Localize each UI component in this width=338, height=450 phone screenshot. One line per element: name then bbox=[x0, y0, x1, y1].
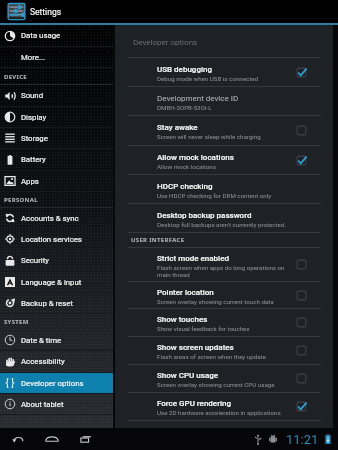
button[interactable]: About tablet bbox=[0, 394, 113, 415]
staticText: Screen overlay showing current touch dat… bbox=[157, 298, 274, 305]
button[interactable]: Sound bbox=[0, 85, 113, 107]
staticText: Pointer location bbox=[157, 288, 214, 297]
staticText: Stay awake bbox=[157, 123, 198, 132]
button[interactable]: Accessibility bbox=[0, 351, 113, 373]
staticText: Development device ID bbox=[157, 94, 239, 103]
staticText: Accounts & sync bbox=[21, 214, 79, 223]
button[interactable]: Pointer location bbox=[115, 282, 333, 309]
staticText: Location services bbox=[21, 235, 82, 244]
staticText: USB debugging bbox=[157, 65, 212, 74]
button[interactable]: Display bbox=[0, 107, 113, 128]
staticText: PERSONAL bbox=[4, 196, 38, 204]
button[interactable]: Backup & reset bbox=[0, 293, 113, 314]
staticText: Show visual feedback for touches bbox=[157, 325, 250, 332]
button[interactable]: USB debugging bbox=[115, 58, 333, 87]
staticText: Allow mock locations bbox=[157, 153, 234, 162]
button[interactable]: Show CPU usage bbox=[115, 365, 333, 393]
button[interactable]: Accounts & sync bbox=[0, 208, 113, 229]
staticText: Force GPU rendering bbox=[157, 399, 231, 408]
staticText: DMBH-3OPB-53OI-L bbox=[157, 104, 212, 111]
staticText: Display bbox=[21, 113, 47, 122]
staticText: HDCP checking bbox=[157, 182, 213, 191]
staticText: DEVICE bbox=[4, 73, 27, 81]
staticText: About tablet bbox=[21, 400, 64, 409]
staticText: Accessibility bbox=[21, 357, 65, 366]
staticText: Use 2D hardware acceleration in applicat… bbox=[157, 409, 281, 416]
button[interactable]: Settings bbox=[7, 2, 26, 21]
staticText: Show CPU usage bbox=[157, 371, 219, 380]
staticText: Settings bbox=[30, 7, 62, 17]
staticText: Apps bbox=[21, 177, 39, 186]
staticText: Debug mode when USB is connected bbox=[157, 75, 259, 82]
staticText: 11:21 bbox=[286, 432, 319, 447]
button[interactable]: Battery bbox=[0, 149, 113, 171]
staticText: USER INTERFACE bbox=[131, 236, 185, 244]
button[interactable]: Date & time bbox=[0, 330, 113, 351]
staticText: Desktop backup password bbox=[157, 211, 252, 220]
staticText: Sound bbox=[21, 91, 44, 100]
staticText: Use HDCP checking for DRM content only bbox=[157, 192, 272, 199]
button[interactable]: Developer options bbox=[0, 373, 113, 394]
staticText: Developer options bbox=[21, 379, 84, 388]
button[interactable]: Show screen updates bbox=[115, 337, 333, 365]
staticText: Date & time bbox=[21, 336, 62, 345]
button[interactable]: Show touches bbox=[115, 309, 333, 337]
staticText: Developer options bbox=[133, 38, 198, 47]
staticText: Data usage bbox=[21, 31, 61, 40]
staticText: Screen overlay showing current CPU usage bbox=[157, 381, 275, 388]
button[interactable]: Data usage bbox=[0, 25, 113, 47]
staticText: Security bbox=[21, 256, 49, 265]
button[interactable]: Force GPU rendering bbox=[115, 393, 333, 421]
button[interactable]: Location services bbox=[0, 229, 113, 250]
button[interactable]: Home bbox=[44, 431, 60, 447]
staticText: Show screen updates bbox=[157, 343, 234, 352]
staticText: Flash screen when apps do long operation… bbox=[157, 264, 289, 278]
button[interactable]: Development device ID bbox=[115, 87, 333, 116]
staticText: Backup & reset bbox=[21, 299, 73, 308]
button[interactable]: Back bbox=[10, 431, 26, 447]
staticText: More... bbox=[21, 53, 46, 62]
staticText: Show touches bbox=[157, 315, 208, 324]
staticText: Flash areas of screen when they update bbox=[157, 353, 266, 360]
button[interactable]: Security bbox=[0, 250, 113, 272]
button[interactable]: Apps bbox=[0, 171, 113, 192]
button[interactable]: Desktop backup password bbox=[115, 204, 333, 233]
button[interactable]: Language & input bbox=[0, 272, 113, 293]
staticText: Allow mock locations bbox=[157, 163, 216, 170]
staticText: Strict mode enabled bbox=[157, 254, 229, 263]
button[interactable]: Strict mode enabled bbox=[115, 248, 333, 282]
button[interactable]: HDCP checking bbox=[115, 175, 333, 204]
staticText: Language & input bbox=[21, 278, 82, 287]
staticText: Storage bbox=[21, 134, 48, 143]
button[interactable]: More... bbox=[0, 47, 113, 68]
button[interactable]: Storage bbox=[0, 128, 113, 149]
button[interactable]: Recent apps bbox=[78, 431, 94, 447]
staticText: SYSTEM bbox=[4, 318, 29, 326]
staticText: Screen will never sleep while charging bbox=[157, 133, 261, 140]
button[interactable]: Allow mock locations bbox=[115, 146, 333, 175]
staticText: Desktop full backups aren't currently pr… bbox=[157, 221, 287, 228]
button[interactable]: Stay awake bbox=[115, 116, 333, 146]
staticText: Battery bbox=[21, 155, 46, 164]
